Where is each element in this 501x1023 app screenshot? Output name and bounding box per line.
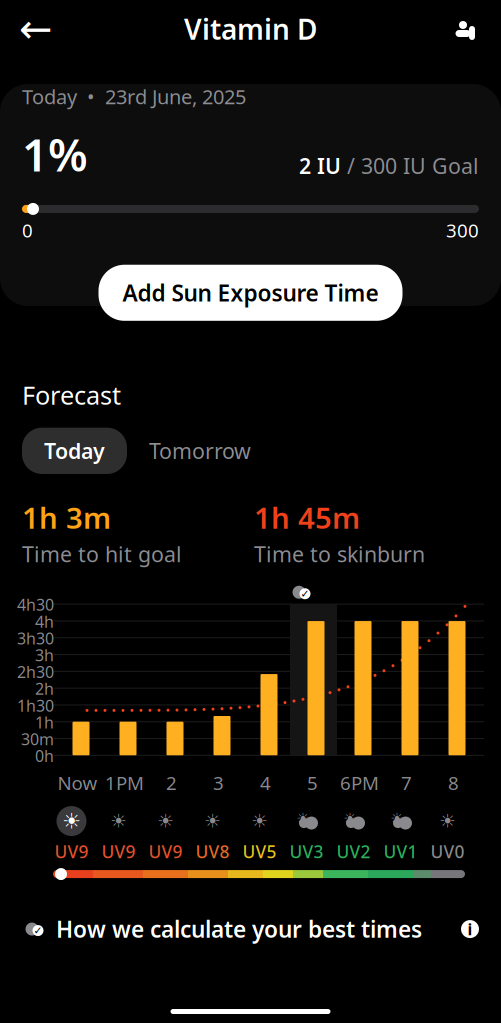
- staticText: 1h30: [17, 695, 54, 716]
- staticText: Vitamin D: [184, 10, 317, 48]
- button[interactable]: Hour 9 ultraviolet index UV0: [424, 805, 471, 863]
- staticText: 1h 45m: [254, 498, 360, 537]
- button[interactable]: Hour 6 ultraviolet index UV3: [283, 805, 330, 863]
- staticText: Add Sun Exposure Time: [122, 278, 378, 308]
- staticText: ☀: [296, 810, 309, 827]
- staticText: Time to hit goal: [22, 540, 182, 568]
- button[interactable]: Hour 1 ultraviolet index UV9: [48, 805, 95, 863]
- staticText: How we calculate your best times: [56, 914, 422, 944]
- staticText: 1%: [22, 124, 88, 184]
- staticText: i: [467, 918, 472, 940]
- staticText: 3h30: [17, 628, 54, 649]
- button[interactable]: Hour 2 ultraviolet index UV9: [95, 805, 142, 863]
- staticText: Today • 23rd June, 2025: [22, 83, 246, 110]
- staticText: / 300 IU Goal: [341, 152, 479, 180]
- button[interactable]: Edit profile: [439, 3, 491, 55]
- staticText: Tomorrow: [149, 437, 251, 465]
- staticText: Time to skinburn: [254, 540, 425, 568]
- staticText: 7: [401, 770, 412, 795]
- staticText: UV9: [54, 840, 88, 863]
- staticText: ✓: [33, 924, 42, 937]
- staticText: Forecast: [22, 378, 121, 412]
- button[interactable]: Hour 4 ultraviolet index UV8: [189, 805, 236, 863]
- staticText: ☀: [343, 810, 356, 827]
- staticText: UV0: [430, 840, 464, 863]
- staticText: UV8: [195, 840, 229, 863]
- staticText: 3h: [35, 644, 54, 666]
- staticText: 5: [307, 770, 318, 795]
- staticText: 1PM: [105, 770, 144, 795]
- button[interactable]: Hour 5 ultraviolet index UV5: [236, 805, 283, 863]
- staticText: 1h 3m: [22, 498, 111, 537]
- staticText: 4h: [35, 611, 54, 632]
- staticText: Now: [57, 770, 97, 795]
- button[interactable]: Hour 3 ultraviolet index UV9: [142, 805, 189, 863]
- staticText: 300: [446, 218, 479, 243]
- staticText: 4: [260, 770, 271, 795]
- staticText: 2 IU: [299, 152, 341, 180]
- staticText: 2h30: [17, 661, 54, 682]
- staticText: ☀: [390, 810, 403, 827]
- staticText: ☀: [62, 809, 81, 833]
- staticText: 0: [22, 218, 33, 243]
- button[interactable]: ✓: [0, 907, 501, 951]
- staticText: 3: [213, 770, 224, 795]
- staticText: 2h: [35, 678, 54, 699]
- button[interactable]: Today: [22, 428, 127, 474]
- staticText: UV3: [289, 840, 323, 863]
- staticText: Today: [44, 437, 105, 465]
- button[interactable]: Tomorrow: [127, 428, 273, 474]
- staticText: ✓: [300, 588, 309, 600]
- staticText: ☀: [110, 810, 127, 832]
- staticText: ☀: [157, 810, 174, 832]
- staticText: UV1: [383, 840, 417, 863]
- staticText: UV2: [336, 840, 370, 863]
- button[interactable]: Hour 7 ultraviolet index UV2: [330, 805, 377, 863]
- staticText: 6PM: [340, 770, 379, 795]
- staticText: 8: [448, 770, 459, 795]
- staticText: 1h: [35, 712, 54, 733]
- staticText: 30m: [21, 728, 54, 750]
- staticText: ☀: [204, 810, 221, 832]
- staticText: ☀: [439, 810, 456, 832]
- staticText: ☀: [251, 810, 268, 832]
- staticText: 4h30: [17, 594, 54, 615]
- staticText: UV5: [242, 840, 276, 863]
- staticText: ←: [19, 6, 53, 52]
- button[interactable]: Back: [10, 3, 62, 55]
- staticText: UV9: [148, 840, 182, 863]
- button[interactable]: Add Sun Exposure Time: [98, 265, 402, 321]
- staticText: 2: [166, 770, 177, 795]
- staticText: 0h: [35, 745, 54, 766]
- staticText: UV9: [101, 840, 135, 863]
- button[interactable]: Hour 8 ultraviolet index UV1: [377, 805, 424, 863]
